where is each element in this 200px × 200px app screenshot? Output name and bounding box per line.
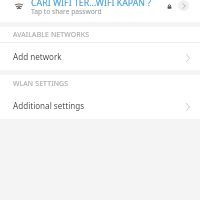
staticText: CARI WIFI TER...WIFI KAPAN ? [31, 0, 152, 9]
staticText: WLAN SETTINGS [13, 79, 69, 88]
button[interactable]: Additional settings [0, 92, 200, 119]
button[interactable]: CARI WIFI TER...WIFI KAPAN ? [0, 0, 200, 22]
button[interactable]: Add network [0, 43, 200, 70]
staticText: Additional settings [13, 100, 85, 111]
staticText: Tap to share password [31, 7, 102, 16]
button[interactable]: Network details [178, 0, 189, 11]
staticText: Add network [13, 51, 62, 62]
staticText: AVAILABLE NETWORKS [13, 30, 90, 39]
